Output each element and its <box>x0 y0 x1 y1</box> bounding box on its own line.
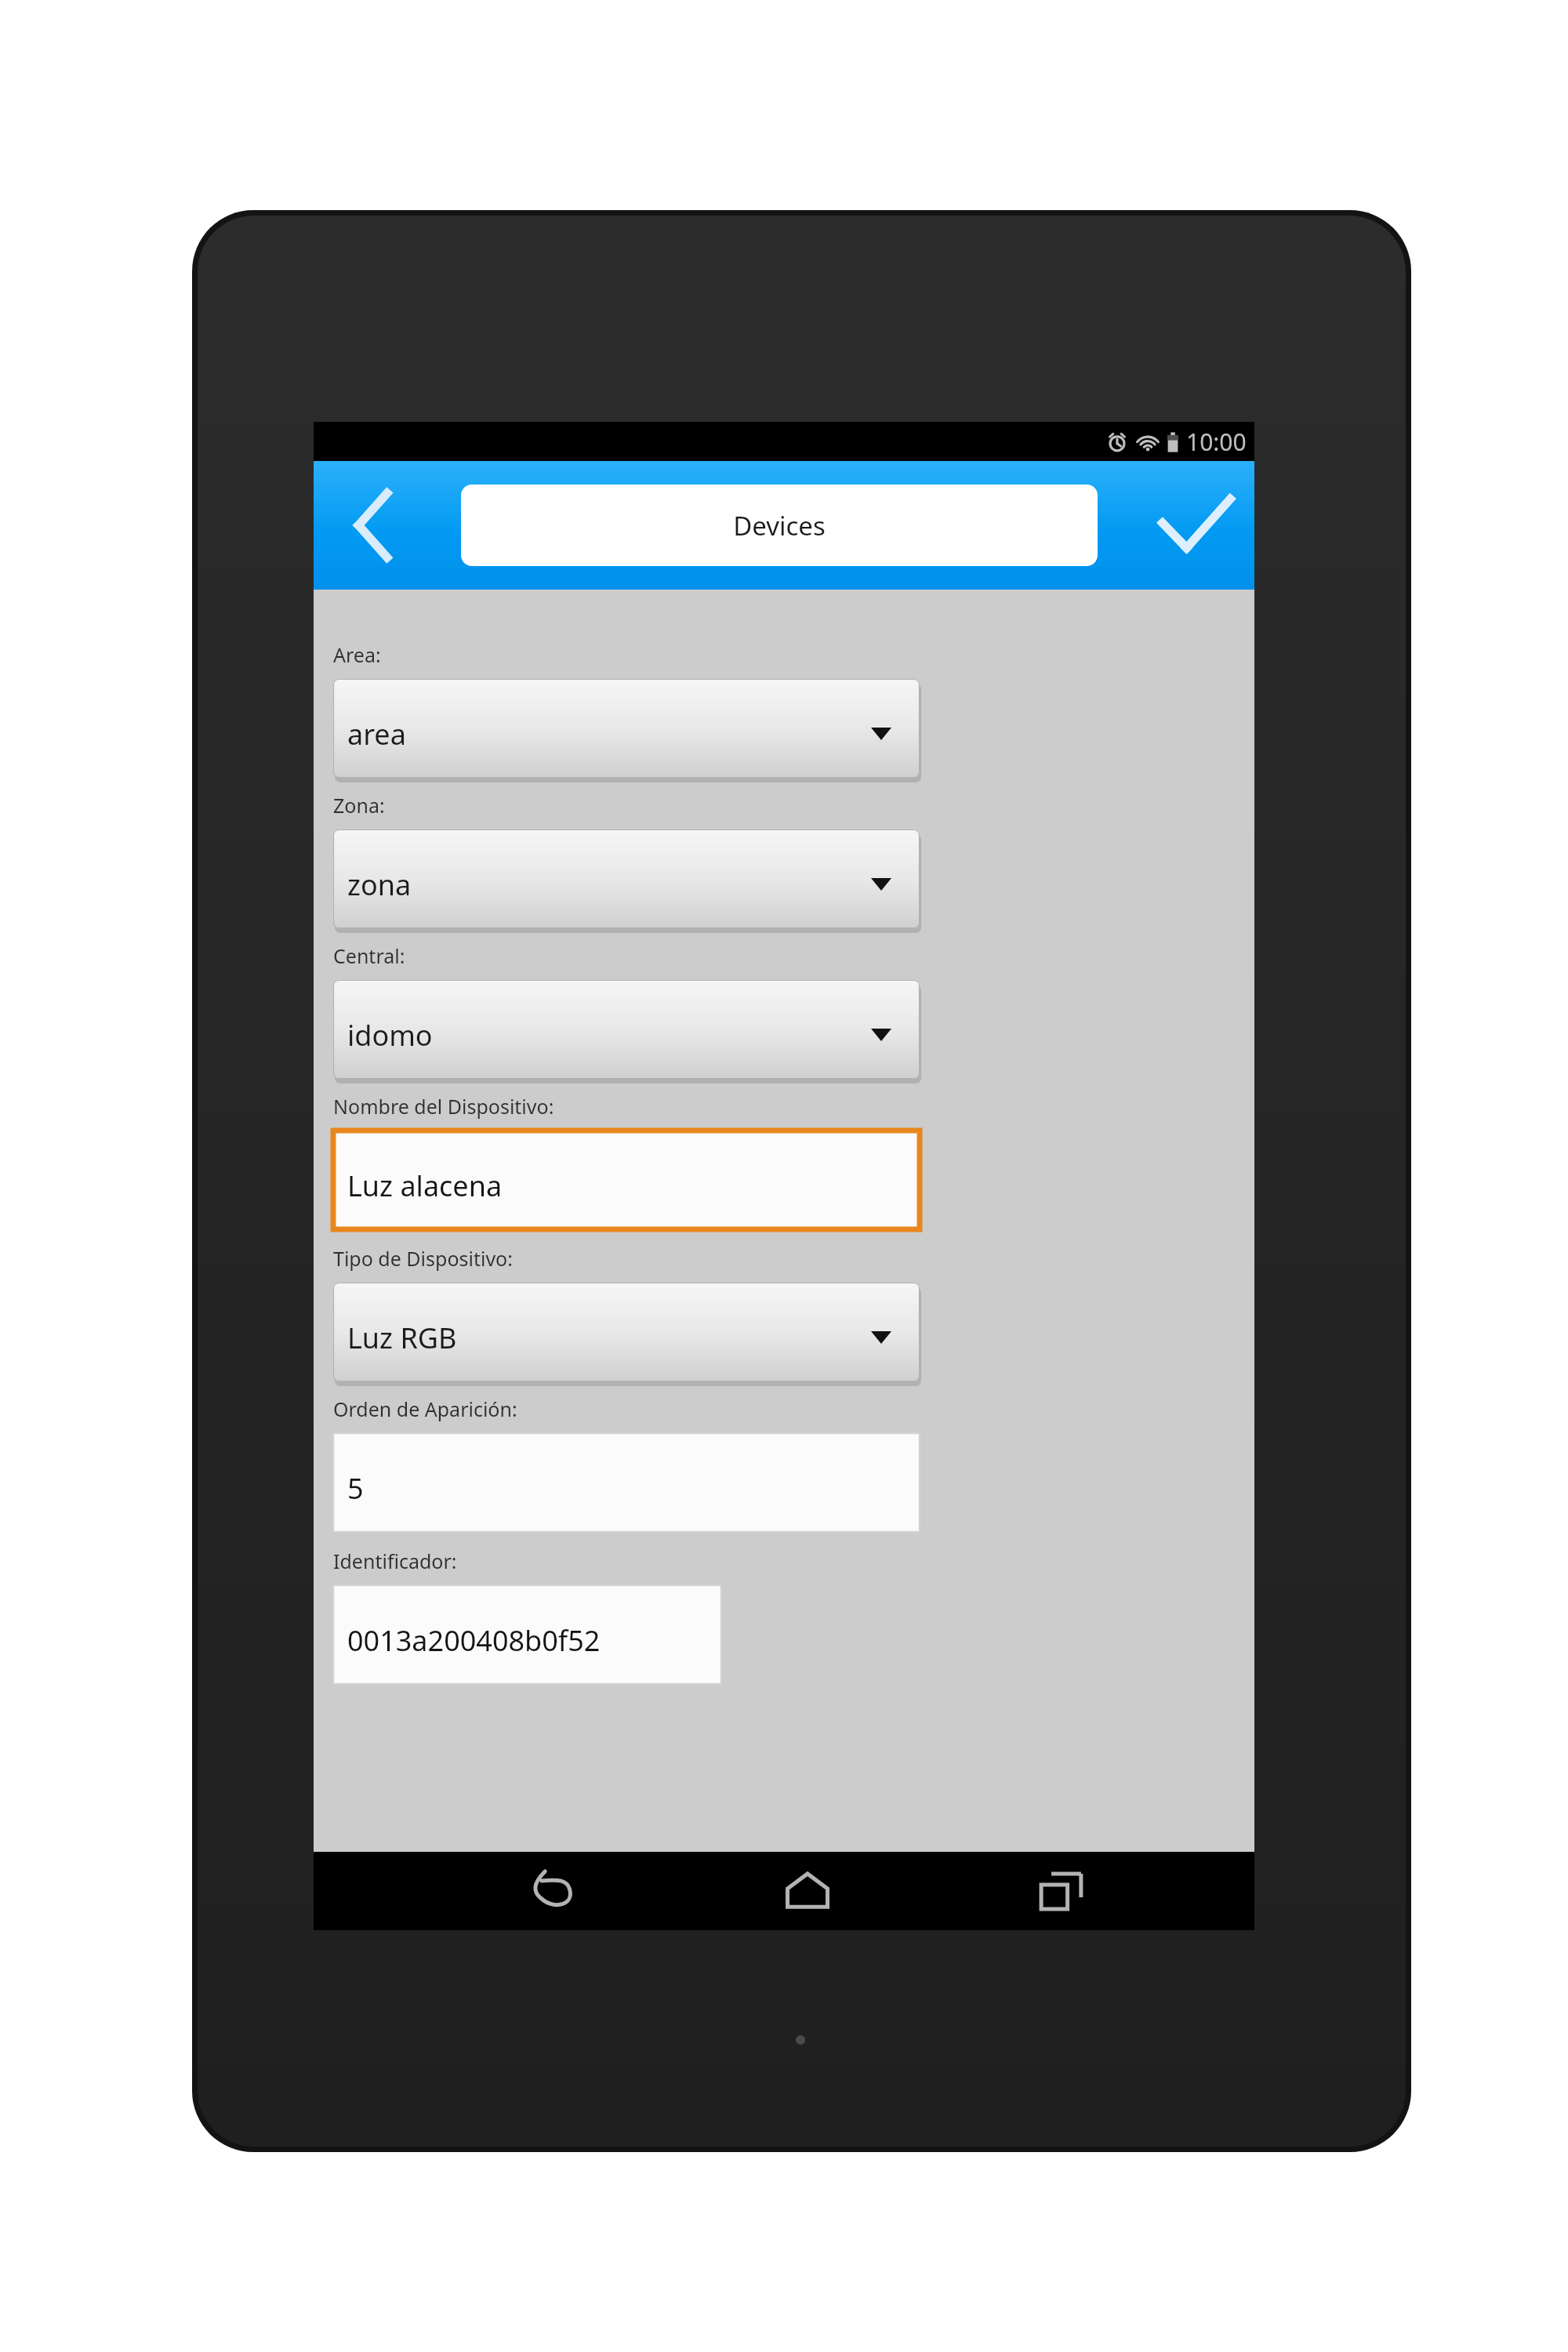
staticText: Nombre del Dispositivo: <box>333 1093 554 1120</box>
staticText: area <box>347 715 406 753</box>
staticText: Tipo de Dispositivo: <box>333 1245 513 1272</box>
staticText: 5 <box>347 1469 364 1508</box>
staticText: Central: <box>333 942 405 969</box>
button[interactable]: Home <box>739 1852 877 1930</box>
staticText: Devices <box>733 508 826 543</box>
staticText: 0013a200408b0f52 <box>347 1621 601 1660</box>
staticText: Zona: <box>333 792 385 818</box>
button[interactable]: 5 <box>333 1433 920 1532</box>
button[interactable]: Luz alacena <box>333 1131 920 1229</box>
button[interactable]: Back <box>485 1852 622 1930</box>
staticText: zona <box>347 866 412 904</box>
button[interactable]: area <box>333 679 920 778</box>
staticText: Luz RGB <box>347 1319 457 1357</box>
button[interactable]: 0013a200408b0f52 <box>333 1585 721 1684</box>
button[interactable]: Done <box>1137 461 1254 590</box>
staticText: Orden de Aparición: <box>333 1396 517 1422</box>
button[interactable]: Luz RGB <box>333 1283 920 1381</box>
staticText: Identificador: <box>333 1548 457 1574</box>
button[interactable]: Back <box>314 461 431 590</box>
button[interactable]: zona <box>333 829 920 928</box>
staticText: 10:00 <box>1186 426 1247 458</box>
button[interactable]: Recent apps <box>993 1852 1131 1930</box>
staticText: Luz alacena <box>347 1167 503 1205</box>
button[interactable]: idomo <box>333 980 920 1079</box>
button[interactable]: Devices <box>461 485 1098 566</box>
staticText: Area: <box>333 641 381 668</box>
staticText: idomo <box>347 1016 433 1054</box>
